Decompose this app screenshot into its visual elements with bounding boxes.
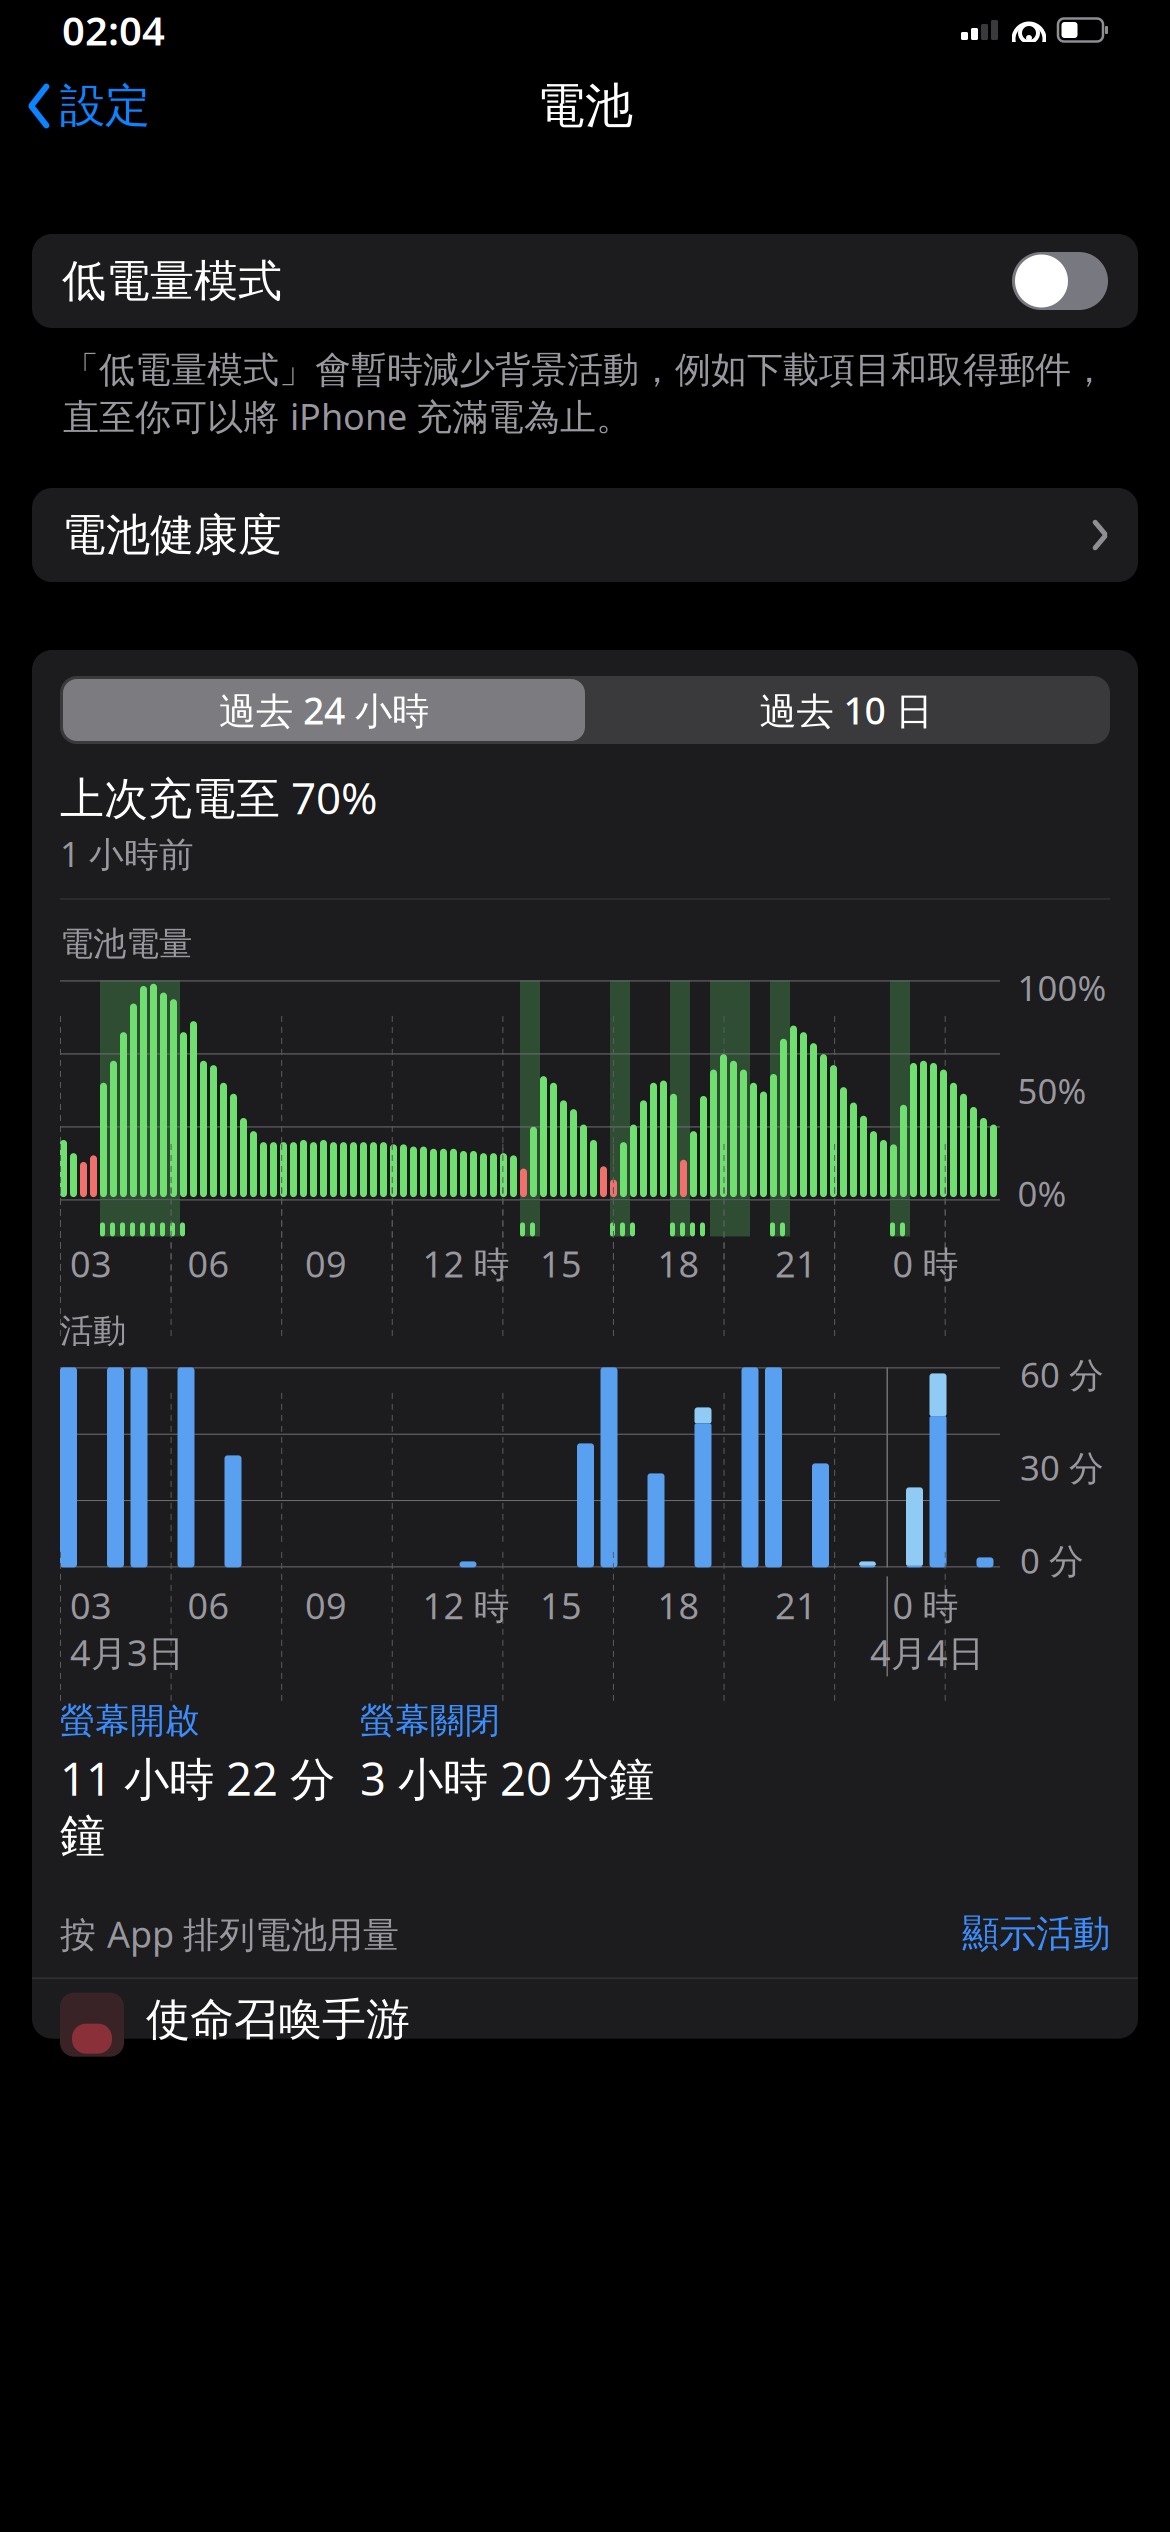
staticText: 0%	[1017, 1170, 1066, 1216]
staticText: 09	[305, 1581, 347, 1629]
staticText: 過去 24 小時	[219, 685, 429, 735]
staticText: 活動	[60, 1310, 126, 1351]
button[interactable]: 設定	[24, 70, 154, 142]
staticText: 設定	[60, 78, 150, 134]
staticText: 按 App 排列電池用量	[60, 1910, 399, 1958]
staticText: 30 分	[1020, 1444, 1104, 1490]
staticText: 15	[540, 1239, 582, 1287]
staticText: 1 小時前	[60, 830, 194, 876]
staticText: 21	[775, 1581, 817, 1629]
staticText: 低電量模式	[62, 254, 282, 308]
button[interactable]: 電池健康度	[32, 488, 1138, 582]
staticText: 螢幕關閉	[360, 1699, 500, 1742]
staticText: 3 小時 20 分鐘	[360, 1748, 654, 1808]
staticText: 18	[657, 1581, 699, 1629]
staticText: 0 時	[892, 1581, 958, 1629]
staticText: 03	[70, 1239, 112, 1287]
staticText: 螢幕開啟	[60, 1699, 200, 1742]
staticText: 4月3日	[70, 1628, 184, 1676]
staticText: 12 時	[422, 1581, 509, 1629]
staticText: 0 分	[1020, 1537, 1084, 1583]
staticText: 4月4日	[870, 1628, 984, 1676]
button[interactable]: 過去 24 小時	[63, 679, 585, 741]
staticText: 06	[187, 1239, 229, 1287]
staticText: 電池電量	[60, 923, 192, 964]
staticText: 03	[70, 1581, 112, 1629]
staticText: 100%	[1017, 964, 1106, 1010]
button[interactable]: 低電量模式	[32, 234, 1138, 328]
staticText: 顯示活動	[962, 1911, 1110, 1957]
staticText: 過去 10 日	[759, 685, 932, 735]
staticText: 09	[305, 1239, 347, 1287]
staticText: 0 時	[892, 1239, 958, 1287]
button[interactable]: 過去 10 日	[585, 679, 1107, 741]
staticText: 50%	[1017, 1067, 1086, 1113]
staticText: 18	[657, 1239, 699, 1287]
staticText: 06	[187, 1581, 229, 1629]
staticText: 21	[775, 1239, 817, 1287]
staticText: 使命召喚手游	[146, 1993, 410, 2047]
staticText: 12 時	[422, 1239, 509, 1287]
button[interactable]: 使命召喚手游	[60, 1979, 1110, 2039]
staticText: 11 小時 22 分鐘	[60, 1748, 335, 1864]
staticText: 上次充電至 70%	[60, 768, 378, 826]
button[interactable]: 顯示活動	[962, 1911, 1110, 1957]
staticText: 「低電量模式」會暫時減少背景活動，例如下載項目和取得郵件，直至你可以將 iPho…	[63, 348, 1107, 440]
staticText: 60 分	[1020, 1351, 1104, 1397]
staticText: 電池健康度	[62, 508, 282, 562]
staticText: 15	[540, 1581, 582, 1629]
staticText: 02:04	[62, 3, 165, 56]
staticText: 電池	[537, 76, 633, 135]
